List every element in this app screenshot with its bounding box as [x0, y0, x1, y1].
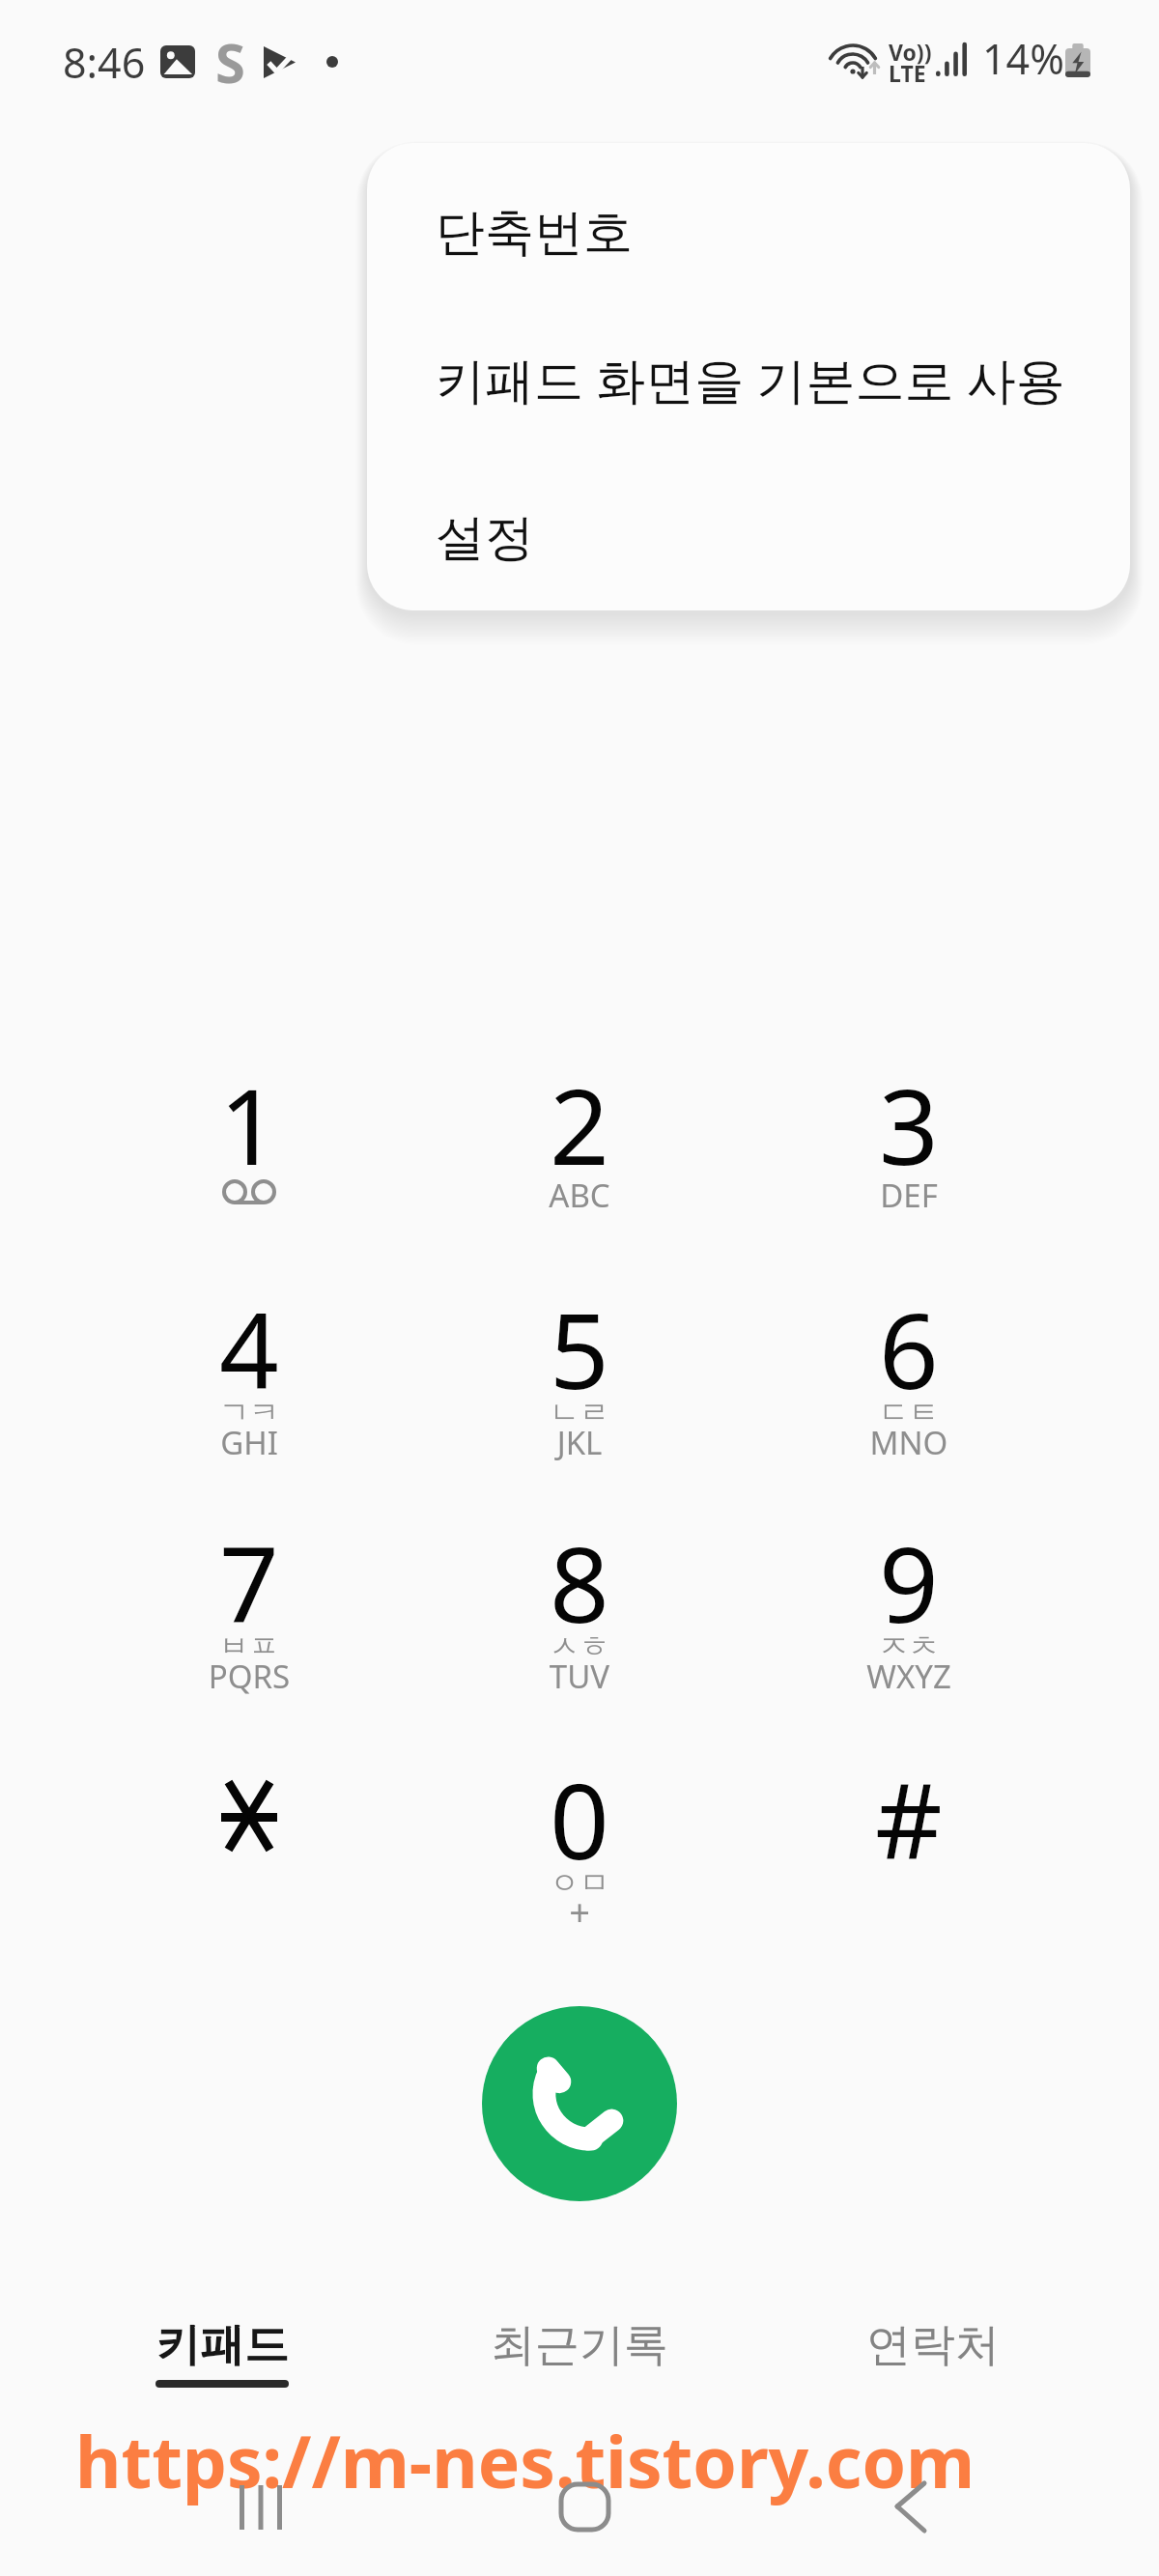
staticText: 2 — [435, 1054, 724, 1196]
button[interactable]: 8 — [435, 1493, 724, 1717]
staticText: ㅈㅊ — [764, 1628, 1054, 1665]
staticText: TUV — [435, 1655, 724, 1698]
button[interactable]: # — [764, 1730, 1054, 1954]
staticText: 8:46 — [63, 34, 146, 91]
button[interactable]: 3 — [764, 1035, 1054, 1260]
staticText: ㅅㅎ — [435, 1628, 724, 1665]
staticText: 키패드 — [58, 2317, 386, 2373]
staticText: LTE — [889, 58, 926, 88]
button[interactable]: 단축번호 — [367, 157, 1130, 307]
staticText: 6 — [764, 1278, 1054, 1420]
staticText: ㄴㄹ — [435, 1394, 724, 1431]
button[interactable]: 5 — [435, 1260, 724, 1484]
button[interactable]: 6 — [764, 1260, 1054, 1484]
button[interactable]: 최근기록 — [415, 2291, 744, 2407]
staticText: 연락처 — [769, 2317, 1097, 2373]
button[interactable]: Call — [482, 2006, 677, 2201]
button[interactable]: 설정 — [367, 463, 1130, 610]
staticText: https://m-nes.tistory.com — [75, 2413, 975, 2508]
staticText: ABC — [435, 1174, 724, 1217]
button[interactable]: Home — [507, 2453, 662, 2569]
staticText: 1 — [104, 1054, 394, 1196]
staticText: 0 — [435, 1748, 724, 1890]
button[interactable]: 키패드 화면을 기본으로 사용 — [367, 303, 1130, 453]
staticText: PQRS — [104, 1655, 394, 1698]
button[interactable]: Back — [850, 2453, 1004, 2569]
staticText: 14% — [982, 30, 1064, 87]
staticText: MNO — [764, 1421, 1054, 1464]
button[interactable] — [104, 1730, 394, 1954]
staticText: 설정 — [436, 507, 534, 569]
button[interactable]: 1 — [104, 1035, 394, 1260]
staticText: 최근기록 — [415, 2317, 744, 2373]
staticText: S — [215, 25, 245, 99]
staticText: 8 — [435, 1512, 724, 1654]
staticText: # — [764, 1748, 1054, 1890]
staticText: ㄱㅋ — [104, 1394, 394, 1431]
button[interactable]: 7 — [104, 1493, 394, 1717]
button[interactable]: 연락처 — [769, 2291, 1097, 2407]
staticText: ㄷㅌ — [764, 1394, 1054, 1431]
staticText: ㅇㅁ — [435, 1864, 724, 1902]
staticText: 단축번호 — [436, 202, 633, 264]
button[interactable]: 키패드 — [58, 2291, 386, 2407]
button[interactable]: 4 — [104, 1260, 394, 1484]
staticText: Vo)) — [889, 37, 932, 67]
staticText: 4 — [104, 1278, 394, 1420]
staticText: 9 — [764, 1512, 1054, 1654]
button[interactable]: 9 — [764, 1493, 1054, 1717]
staticText: GHI — [104, 1421, 394, 1464]
button[interactable]: 2 — [435, 1035, 724, 1260]
staticText: + — [435, 1886, 724, 1937]
button[interactable]: 0 — [435, 1730, 724, 1954]
button[interactable]: Recent apps — [182, 2453, 336, 2569]
staticText: 3 — [764, 1054, 1054, 1196]
staticText: DEF — [764, 1174, 1054, 1217]
staticText: 7 — [104, 1512, 394, 1654]
staticText: JKL — [435, 1421, 724, 1464]
staticText: 키패드 화면을 기본으로 사용 — [436, 345, 1065, 412]
staticText: ㅂㅍ — [104, 1628, 394, 1665]
staticText: 5 — [435, 1278, 724, 1420]
staticText: WXYZ — [764, 1655, 1054, 1698]
